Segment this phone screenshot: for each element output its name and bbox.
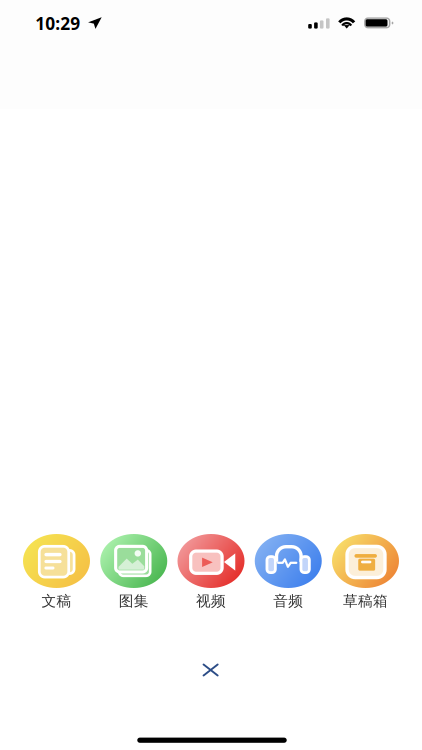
button[interactable]: 文稿: [23, 534, 90, 614]
staticText: 音频: [273, 592, 303, 610]
button[interactable]: 视频: [177, 534, 244, 614]
staticText: 视频: [196, 592, 226, 610]
button[interactable]: 音频: [255, 534, 322, 614]
staticText: 草稿箱: [343, 592, 388, 610]
button[interactable]: Close: [189, 648, 233, 692]
button[interactable]: 图集: [100, 534, 167, 614]
staticText: 图集: [119, 592, 149, 610]
staticText: 10:29: [35, 12, 80, 35]
button[interactable]: 草稿箱: [332, 534, 399, 614]
staticText: 文稿: [41, 592, 71, 610]
